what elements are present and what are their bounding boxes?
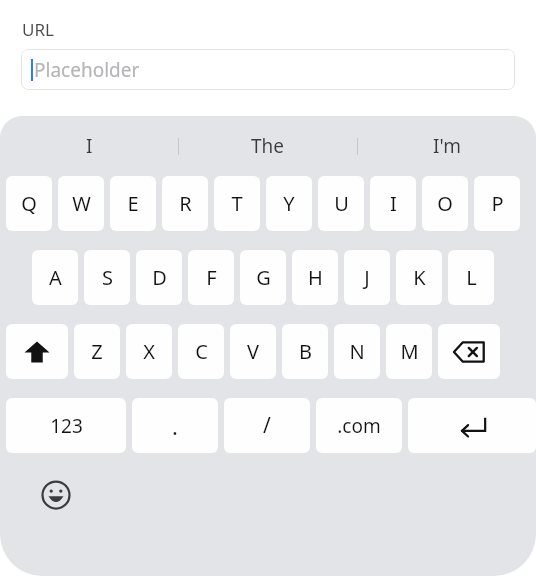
button[interactable]: K xyxy=(396,250,442,305)
staticText: V xyxy=(247,338,259,365)
button[interactable]: Y xyxy=(266,176,312,231)
button[interactable]: The xyxy=(178,116,357,176)
staticText: N xyxy=(349,338,365,365)
button[interactable]: . xyxy=(132,398,218,453)
staticText: Y xyxy=(283,190,295,217)
button[interactable]: E xyxy=(110,176,156,231)
staticText: X xyxy=(143,338,155,365)
staticText: Placeholder xyxy=(34,57,140,83)
staticText: Z xyxy=(91,338,103,365)
button[interactable]: I'm xyxy=(357,116,536,176)
button[interactable]: Z xyxy=(74,324,120,379)
staticText: H xyxy=(308,264,323,291)
button[interactable]: G xyxy=(240,250,286,305)
staticText: B xyxy=(299,338,312,365)
staticText: .com xyxy=(337,413,381,439)
staticText: D xyxy=(152,264,167,291)
staticText: G xyxy=(256,264,271,291)
staticText: / xyxy=(263,411,271,440)
button[interactable]: N xyxy=(334,324,380,379)
button[interactable]: U xyxy=(318,176,364,231)
staticText: T xyxy=(231,190,243,217)
button[interactable]: V xyxy=(230,324,276,379)
staticText: A xyxy=(49,264,62,291)
button[interactable]: H xyxy=(292,250,338,305)
staticText: 123 xyxy=(50,413,83,439)
button[interactable]: X xyxy=(126,324,172,379)
button[interactable]: O xyxy=(422,176,468,231)
button[interactable]: J xyxy=(344,250,390,305)
staticText: P xyxy=(491,190,504,217)
button[interactable]: B xyxy=(282,324,328,379)
staticText: . xyxy=(172,411,178,441)
staticText: K xyxy=(413,264,426,291)
button[interactable]: Return xyxy=(408,398,536,453)
button[interactable]: R xyxy=(162,176,208,231)
button[interactable]: T xyxy=(214,176,260,231)
staticText: I'm xyxy=(433,133,461,159)
button[interactable]: Shift xyxy=(6,324,68,379)
button[interactable]: Q xyxy=(6,176,52,231)
button[interactable]: / xyxy=(224,398,310,453)
button[interactable]: S xyxy=(84,250,130,305)
staticText: W xyxy=(72,190,91,217)
staticText: M xyxy=(400,338,419,365)
button[interactable]: Placeholder xyxy=(21,49,515,90)
staticText: U xyxy=(334,190,349,217)
staticText: C xyxy=(195,338,208,365)
button[interactable]: 123 xyxy=(6,398,126,453)
staticText: R xyxy=(179,190,192,217)
staticText: J xyxy=(364,264,370,291)
staticText: The xyxy=(251,133,285,159)
button[interactable]: I xyxy=(0,116,178,176)
button[interactable]: I xyxy=(370,176,416,231)
button[interactable]: A xyxy=(32,250,78,305)
staticText: F xyxy=(206,264,217,291)
button[interactable]: M xyxy=(386,324,432,379)
button[interactable]: W xyxy=(58,176,104,231)
button[interactable]: C xyxy=(178,324,224,379)
button[interactable]: D xyxy=(136,250,182,305)
button[interactable]: L xyxy=(448,250,494,305)
staticText: E xyxy=(127,190,139,217)
staticText: L xyxy=(466,264,477,291)
button[interactable]: .com xyxy=(316,398,402,453)
button[interactable]: Emoji keyboard xyxy=(34,473,78,517)
staticText: I xyxy=(86,133,93,159)
button[interactable]: F xyxy=(188,250,234,305)
staticText: S xyxy=(102,264,113,291)
staticText: I xyxy=(390,190,397,217)
staticText: Q xyxy=(21,190,37,217)
button[interactable]: P xyxy=(474,176,520,231)
staticText: O xyxy=(437,190,453,217)
button[interactable]: Backspace xyxy=(438,324,500,379)
staticText: URL xyxy=(22,18,54,41)
